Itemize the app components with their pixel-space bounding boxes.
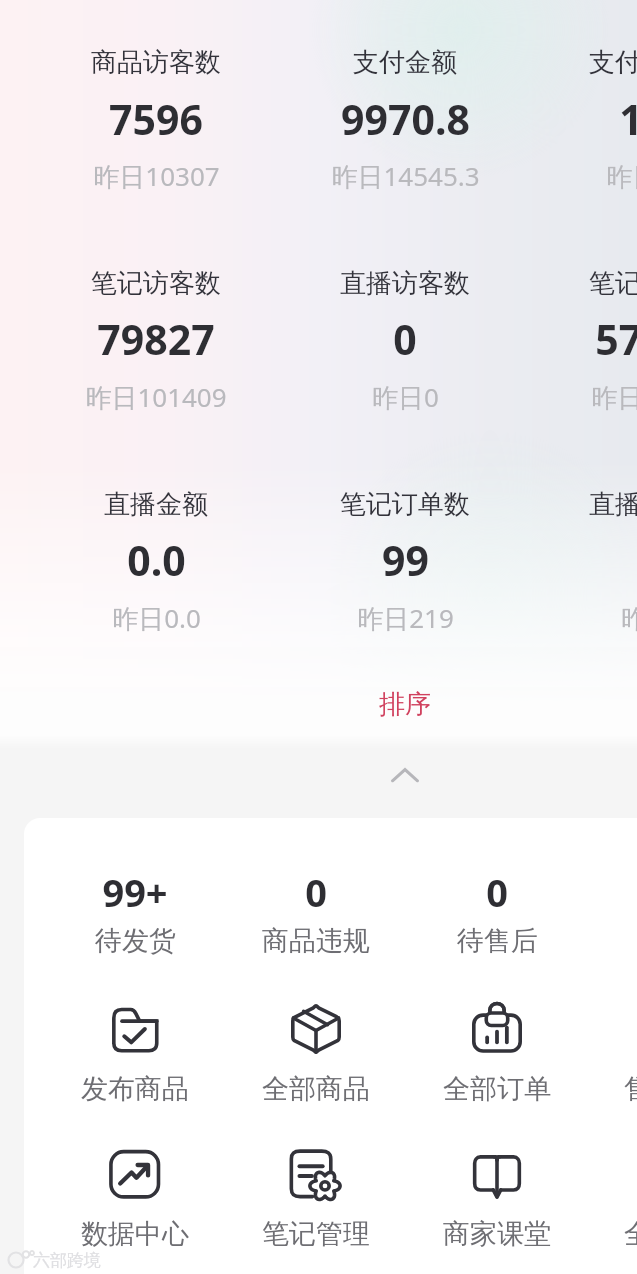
button[interactable]: 排序 xyxy=(365,684,445,724)
staticText: 笔记访客数 xyxy=(91,267,221,300)
staticText: 支付订单数 xyxy=(589,46,637,79)
button[interactable] xyxy=(544,223,637,393)
button[interactable] xyxy=(409,989,585,1129)
staticText: 79827 xyxy=(97,311,215,367)
staticText: 0 xyxy=(305,866,327,918)
staticText: 昨日219 xyxy=(357,600,454,636)
button[interactable] xyxy=(228,989,404,1129)
staticText: 昨日101409 xyxy=(85,379,227,415)
button[interactable] xyxy=(590,989,637,1129)
button[interactable] xyxy=(228,858,404,968)
staticText: 99+ xyxy=(102,866,168,918)
staticText: 9970.8 xyxy=(341,91,470,147)
staticText: 六部跨境 xyxy=(33,1250,101,1271)
staticText: 7596 xyxy=(109,91,203,147)
button[interactable] xyxy=(295,444,515,614)
staticText: 待售后 xyxy=(457,924,538,958)
button[interactable]: Collapse panel xyxy=(373,752,437,798)
staticText: 昨日0.0 xyxy=(112,600,201,636)
staticText: 直播订单数 xyxy=(589,488,637,521)
button[interactable] xyxy=(409,1134,585,1274)
button[interactable] xyxy=(544,2,637,172)
staticText: 99 xyxy=(382,532,429,588)
staticText: 直播访客数 xyxy=(340,267,470,300)
button[interactable] xyxy=(409,858,585,968)
staticText: 支付金额 xyxy=(353,46,457,79)
staticText: 直播金额 xyxy=(104,488,208,521)
button[interactable] xyxy=(544,444,637,614)
staticText: 昨日13209 xyxy=(591,379,637,415)
staticText: 全部商品 xyxy=(262,1072,370,1106)
staticText: 笔记管理 xyxy=(262,1217,370,1251)
staticText: 商家课堂 xyxy=(443,1217,551,1251)
staticText: 0 xyxy=(486,866,508,918)
button[interactable] xyxy=(47,858,223,968)
button[interactable] xyxy=(47,989,223,1129)
button[interactable] xyxy=(46,2,266,172)
staticText: 0 xyxy=(393,311,417,367)
staticText: 168 xyxy=(619,91,637,147)
staticText: 商品违规 xyxy=(262,924,370,958)
staticText: 全部订单 xyxy=(443,1072,551,1106)
staticText: 57125 xyxy=(595,311,637,367)
staticText: 全部功能 xyxy=(624,1217,637,1251)
staticText: 昨日303 xyxy=(606,158,637,194)
button[interactable] xyxy=(47,1134,223,1274)
staticText: 发布商品 xyxy=(81,1072,189,1106)
button[interactable] xyxy=(46,223,266,393)
button[interactable] xyxy=(295,2,515,172)
staticText: 笔记订单数 xyxy=(340,488,470,521)
button[interactable] xyxy=(46,444,266,614)
staticText: 数据中心 xyxy=(81,1217,189,1251)
staticText: 商品访客数 xyxy=(91,46,221,79)
button[interactable] xyxy=(228,1134,404,1274)
staticText: 0.0 xyxy=(127,532,186,588)
staticText: 昨日14545.3 xyxy=(331,158,480,194)
staticText: 昨日0 xyxy=(372,379,439,415)
staticText: 待发货 xyxy=(95,924,176,958)
staticText: 售后管理 xyxy=(624,1072,637,1106)
staticText: 笔记订单数 xyxy=(589,267,637,300)
button[interactable] xyxy=(590,1134,637,1274)
button[interactable] xyxy=(295,223,515,393)
staticText: 排序 xyxy=(379,688,431,721)
staticText: 昨日10307 xyxy=(93,158,220,194)
staticText: 昨日0 xyxy=(621,600,637,636)
